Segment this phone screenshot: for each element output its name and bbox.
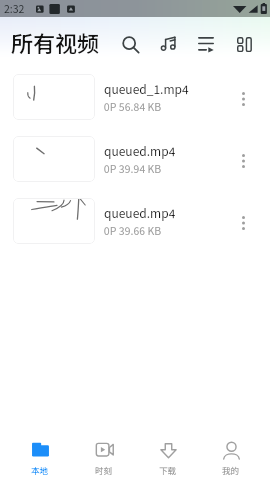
staticText: queued_1.mp4 [104, 80, 189, 97]
button[interactable]: Sort [187, 24, 225, 64]
staticText: 时刻 [95, 464, 113, 476]
staticText: 下载 [159, 464, 177, 476]
staticText: queued.mp4 [104, 204, 176, 221]
button[interactable]: queued_1.mp4 [0, 66, 270, 128]
staticText: 所有视频 [11, 26, 100, 58]
staticText: 0P 39.66 KB [104, 223, 162, 238]
button[interactable]: More options [224, 74, 262, 120]
button[interactable]: Search [111, 24, 149, 64]
staticText: 本地 [31, 464, 49, 476]
button[interactable]: queued.mp4 [0, 190, 270, 252]
staticText: 2:32 [4, 1, 25, 16]
button[interactable]: queued.mp4 [0, 128, 270, 190]
staticText: 0P 39.94 KB [104, 161, 162, 176]
button[interactable]: 下载 [136, 440, 200, 476]
button[interactable]: Grid view [225, 24, 263, 64]
button[interactable]: 我的 [200, 440, 262, 476]
button[interactable]: Music [149, 24, 187, 64]
button[interactable]: More options [224, 136, 262, 182]
staticText: queued.mp4 [104, 142, 176, 159]
button[interactable]: More options [224, 198, 262, 244]
button[interactable]: 时刻 [72, 440, 136, 476]
staticText: 我的 [222, 464, 240, 476]
staticText: 0P 56.84 KB [104, 99, 162, 114]
button[interactable]: 本地 [8, 440, 72, 476]
